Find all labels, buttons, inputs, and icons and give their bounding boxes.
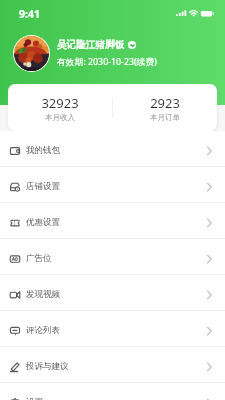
- button[interactable]: 广告位: [0, 239, 225, 275]
- staticText: 设置: [26, 397, 43, 400]
- staticText: 9:41: [19, 7, 40, 21]
- button[interactable]: 优惠设置: [0, 203, 225, 239]
- staticText: 广告位: [26, 253, 52, 264]
- staticText: 投诉与建议: [26, 361, 69, 372]
- button[interactable]: 店铺设置: [0, 167, 225, 203]
- staticText: 发现视频: [26, 289, 60, 300]
- staticText: 吴记隆江猪脚饭: [57, 39, 125, 51]
- staticText: 我的钱包: [26, 145, 60, 156]
- button[interactable]: 我的钱包: [0, 131, 225, 167]
- staticText: 2923: [150, 94, 180, 112]
- staticText: 评论列表: [26, 325, 60, 336]
- staticText: 店铺设置: [26, 181, 60, 192]
- button[interactable]: 设置: [0, 383, 225, 400]
- staticText: 32923: [41, 94, 79, 112]
- button[interactable]: Switch shop: [128, 41, 136, 49]
- staticText: 本月订单: [150, 113, 180, 122]
- button[interactable]: 32923: [8, 84, 112, 131]
- staticText: 优惠设置: [26, 217, 60, 228]
- button[interactable]: 投诉与建议: [0, 347, 225, 383]
- button[interactable]: 2923: [113, 84, 217, 131]
- button[interactable]: 评论列表: [0, 311, 225, 347]
- staticText: 本月收入: [45, 113, 75, 122]
- button[interactable]: 发现视频: [0, 275, 225, 311]
- staticText: 有效期: 2030-10-23(续费): [57, 56, 157, 68]
